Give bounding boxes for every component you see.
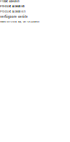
staticText: Produkt auswählen — [0, 0, 19, 3]
staticText: Wähle ein Gerät aus, um fortzufahren — [0, 20, 39, 23]
staticText: Produkt auswählen — [0, 5, 25, 8]
staticText: Produkt auswählen — [0, 10, 26, 13]
staticText: Verfügbare Geräte — [0, 15, 28, 18]
